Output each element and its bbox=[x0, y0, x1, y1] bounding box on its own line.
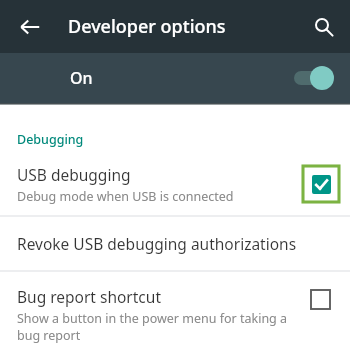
staticText: Show a button in the power menu for taki… bbox=[17, 310, 292, 343]
button[interactable]: On bbox=[0, 53, 350, 103]
button[interactable]: Revoke USB debugging authorizations bbox=[0, 217, 350, 270]
button[interactable]: Search bbox=[304, 7, 344, 47]
staticText: Debugging bbox=[17, 131, 84, 148]
staticText: Debug mode when USB is connected bbox=[17, 188, 234, 205]
staticText: Developer options bbox=[68, 14, 226, 39]
staticText: On bbox=[70, 67, 93, 89]
button[interactable]: Back bbox=[10, 7, 50, 47]
staticText: USB debugging bbox=[17, 164, 131, 185]
staticText: Bug report shortcut bbox=[17, 286, 161, 307]
button[interactable]: USB debugging bbox=[0, 153, 350, 215]
staticText: Revoke USB debugging authorizations bbox=[17, 233, 297, 254]
button[interactable]: Bug report shortcut bbox=[0, 272, 350, 354]
